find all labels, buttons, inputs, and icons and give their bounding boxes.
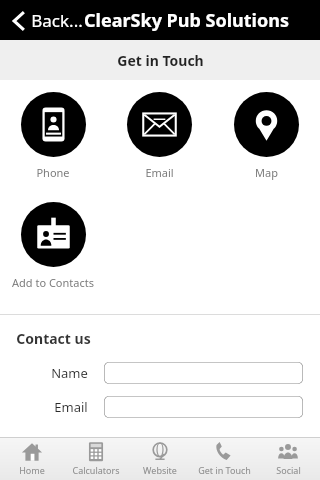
staticText: Get in Touch <box>117 51 204 70</box>
staticText: Phone <box>36 165 70 180</box>
staticText: ClearSky Pub Solutions <box>84 8 289 33</box>
staticText: Home <box>19 464 45 476</box>
button[interactable]: Email <box>106 92 213 180</box>
staticText: Email <box>54 398 88 416</box>
staticText: Contact us <box>16 329 91 348</box>
button[interactable]: Get in Touch <box>192 437 256 480</box>
button[interactable]: Map <box>213 92 320 180</box>
button[interactable]: Website <box>128 437 192 480</box>
button[interactable] <box>104 362 303 384</box>
staticText: Calculators <box>72 464 120 476</box>
staticText: Map <box>255 165 278 180</box>
staticText: Website <box>143 464 177 476</box>
button[interactable]: Home <box>0 437 64 480</box>
staticText: Name <box>51 364 88 382</box>
staticText: Get in Touch <box>198 464 251 476</box>
staticText: Add to Contacts <box>12 275 94 290</box>
button[interactable]: Phone <box>0 92 106 180</box>
staticText: Social <box>276 464 301 476</box>
staticText: Email <box>145 165 174 180</box>
button[interactable]: Calculators <box>64 437 128 480</box>
button[interactable] <box>104 396 303 418</box>
button[interactable]: Social <box>256 437 320 480</box>
button[interactable]: Add to Contacts <box>0 202 106 290</box>
button[interactable]: Back... <box>8 5 87 36</box>
staticText: Back... <box>31 9 83 32</box>
